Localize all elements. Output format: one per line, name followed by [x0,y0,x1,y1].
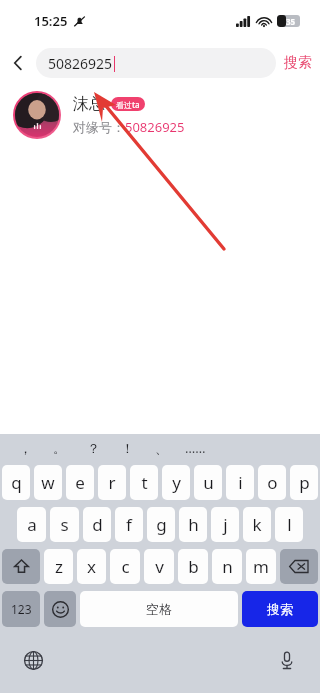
button[interactable]: j [211,507,239,542]
staticText: w [41,471,55,494]
staticText: 35 [286,16,296,27]
staticText: o [267,471,278,494]
button[interactable]: 、 [144,434,178,461]
button[interactable]: 空格 [80,591,238,627]
staticText: h [188,513,199,536]
staticText: 搜索 [267,601,293,617]
button[interactable]: ！ [110,434,144,461]
button[interactable]: 搜索 [242,591,318,627]
button[interactable]: 沫总 [0,84,320,146]
staticText: 、 [155,440,168,456]
button[interactable]: g [147,507,175,542]
button[interactable]: Back [0,42,36,84]
staticText: x [87,555,96,578]
button[interactable]: s [50,507,79,542]
staticText: p [299,471,310,494]
button[interactable]: ？ [76,434,110,461]
staticText: d [92,513,103,536]
staticText: 看过ta [116,99,140,110]
button[interactable]: Emoji [44,591,76,627]
staticText: i [238,471,243,494]
button[interactable]: r [98,465,126,500]
button[interactable]: p [290,465,318,500]
button[interactable]: f [115,507,143,542]
button[interactable]: ， [8,434,42,461]
button[interactable]: e [66,465,94,500]
staticText: 对缘号： [73,119,125,135]
staticText: j [223,513,228,536]
button[interactable]: 。 [42,434,76,461]
staticText: e [75,471,85,494]
button[interactable]: 123 [2,591,40,627]
staticText: r [108,471,116,494]
button[interactable]: m [246,549,276,584]
staticText: 50826925 [125,118,185,136]
staticText: 空格 [146,601,172,617]
button[interactable]: b [178,549,208,584]
button[interactable]: l [275,507,303,542]
button[interactable]: i [226,465,254,500]
staticText: c [121,555,130,578]
staticText: 123 [11,601,32,617]
staticText: s [60,513,69,536]
staticText: …… [185,439,206,457]
staticText: n [222,555,233,578]
staticText: q [11,471,22,494]
staticText: k [252,513,262,536]
button[interactable]: k [243,507,271,542]
staticText: f [126,513,132,536]
button[interactable]: n [212,549,242,584]
staticText: 沫总 [73,94,105,114]
button[interactable]: y [162,465,190,500]
staticText: ， [19,440,32,456]
button[interactable]: a [17,507,46,542]
staticText: v [155,555,164,578]
button[interactable]: x [77,549,106,584]
staticText: u [203,471,214,494]
staticText: z [55,555,63,578]
button[interactable]: Backspace [280,549,318,584]
button[interactable]: z [44,549,73,584]
button[interactable]: o [258,465,286,500]
staticText: g [156,513,167,536]
button[interactable]: v [144,549,174,584]
button[interactable]: c [110,549,140,584]
button[interactable]: Switch language [20,647,46,673]
staticText: t [141,471,148,494]
staticText: ？ [87,440,100,456]
button[interactable]: u [194,465,222,500]
button[interactable]: h [179,507,207,542]
button[interactable]: t [130,465,158,500]
button[interactable]: Shift [2,549,40,584]
staticText: m [253,555,269,578]
staticText: a [27,513,37,536]
staticText: y [172,471,181,494]
staticText: ！ [121,440,134,456]
staticText: 15:25 [34,12,68,30]
button[interactable]: Voice input [274,647,300,673]
button[interactable]: w [34,465,62,500]
staticText: 。 [53,440,66,456]
button[interactable]: 50826925 [36,48,276,78]
button[interactable]: d [83,507,111,542]
button[interactable]: 搜索 [284,54,312,72]
staticText: 50826925 [48,54,113,73]
staticText: 搜索 [284,54,312,72]
staticText: b [188,555,199,578]
staticText: l [287,513,292,536]
button[interactable]: …… [178,434,212,461]
button[interactable]: q [2,465,30,500]
